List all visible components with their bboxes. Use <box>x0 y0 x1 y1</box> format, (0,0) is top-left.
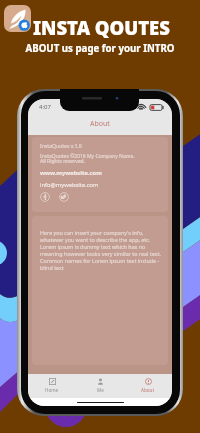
button[interactable]: About <box>124 374 172 393</box>
staticText: About <box>141 387 155 393</box>
staticText: info@mywebsite.com <box>40 181 99 189</box>
staticText: All Rights reserved. <box>40 158 85 165</box>
staticText: www.mywebsite.com <box>40 169 102 177</box>
staticText: meaning however looks very similar to re… <box>40 250 162 257</box>
staticText: Home <box>45 387 59 393</box>
staticText: ABOUT us page for your INTRO <box>0 42 200 55</box>
staticText: Me <box>97 387 104 393</box>
staticText: blind text <box>40 264 64 271</box>
button[interactable]: Me <box>76 374 124 393</box>
staticText: Here you can insert your company's info, <box>40 229 144 236</box>
staticText: Common names for Lorem ipsum text includ… <box>40 257 160 264</box>
staticText: 4:07 <box>39 103 51 111</box>
button[interactable]: Twitter <box>59 192 69 202</box>
staticText: About <box>90 119 110 129</box>
button[interactable]: Home <box>28 374 76 393</box>
staticText: InstaQuotes ©2016 My Company Name. <box>40 153 135 160</box>
staticText: whatever you want to describe the app, e… <box>40 236 151 243</box>
staticText: INSTA QOUTES <box>33 15 170 40</box>
button[interactable]: Facebook <box>40 192 50 202</box>
staticText: Lorem ipsum is dummy text which has no <box>40 243 146 250</box>
staticText: InstaQuotes v.1.0 <box>40 143 82 150</box>
